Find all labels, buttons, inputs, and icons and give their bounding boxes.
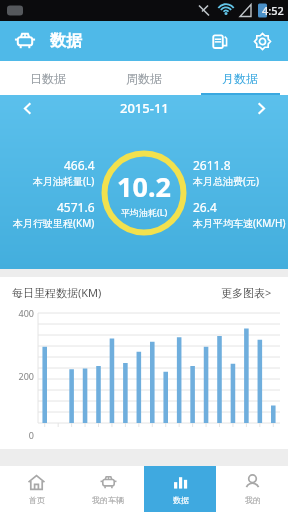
button[interactable]: 我的车辆: [72, 466, 144, 512]
staticText: 更多图表>: [221, 285, 272, 300]
staticText: 466.4: [64, 157, 95, 173]
button[interactable]: 月数据: [192, 61, 288, 95]
button[interactable]: 日数据: [0, 61, 96, 95]
button[interactable]: 我的: [216, 466, 288, 512]
staticText: 平均油耗(L): [121, 206, 168, 218]
button[interactable]: 更多图表>: [217, 281, 276, 304]
staticText: 我的车辆: [92, 495, 124, 505]
staticText: 2611.8: [193, 157, 231, 173]
button[interactable]: Previous month: [14, 95, 40, 121]
button[interactable]: 数据: [144, 466, 216, 512]
button[interactable]: Settings: [246, 25, 278, 57]
staticText: 0: [4, 429, 34, 441]
staticText: 本月行驶里程(KM): [13, 216, 95, 230]
staticText: 本月总油费(元): [193, 174, 259, 188]
staticText: 每日里程数据(KM): [12, 285, 102, 300]
staticText: 首页: [29, 495, 45, 505]
staticText: 数据: [173, 495, 189, 505]
staticText: 26.4: [193, 199, 217, 215]
staticText: 本月平均车速(KM/H): [193, 216, 286, 230]
staticText: 10.2: [117, 168, 171, 205]
button[interactable]: Refuel: [204, 25, 236, 57]
staticText: 本月油耗量(L): [33, 174, 95, 188]
staticText: 月数据: [222, 71, 258, 86]
staticText: 数据: [50, 31, 82, 51]
staticText: 400: [4, 307, 34, 319]
staticText: 我的: [245, 495, 261, 505]
staticText: 周数据: [126, 71, 162, 86]
staticText: 2015-11: [120, 99, 169, 117]
button[interactable]: 首页: [0, 466, 72, 512]
staticText: 4571.6: [57, 199, 95, 215]
button[interactable]: 周数据: [96, 61, 192, 95]
staticText: 日数据: [30, 71, 66, 86]
staticText: 200: [4, 370, 34, 382]
staticText: 4:52: [262, 3, 284, 18]
button[interactable]: Next month: [248, 95, 274, 121]
button[interactable]: Vehicle: [10, 26, 40, 56]
